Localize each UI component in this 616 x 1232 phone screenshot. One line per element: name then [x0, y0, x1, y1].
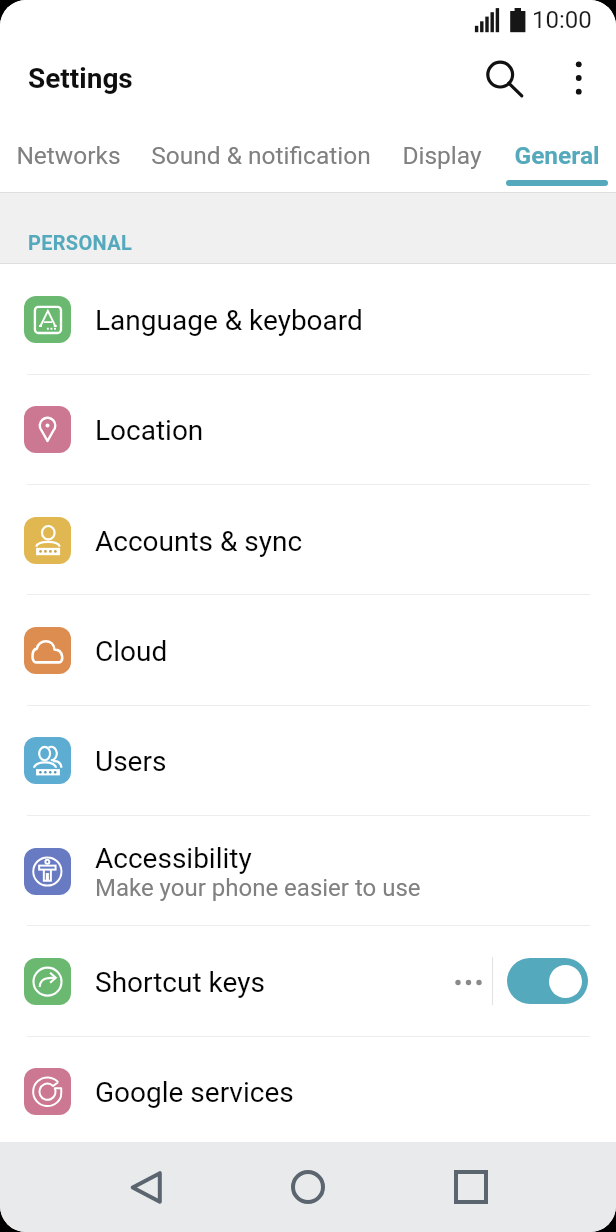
- staticText: General: [514, 141, 600, 170]
- staticText: Settings: [28, 62, 133, 95]
- button[interactable]: Accessibility: [0, 816, 616, 926]
- staticText: Make your phone easier to use: [95, 874, 421, 902]
- button[interactable]: Users: [0, 705, 616, 815]
- staticText: Shortcut keys: [95, 966, 265, 999]
- button[interactable]: Sound & notification: [136, 112, 386, 192]
- staticText: Language & keyboard: [95, 304, 363, 337]
- staticText: Google services: [95, 1076, 294, 1109]
- button[interactable]: General: [498, 112, 616, 192]
- button[interactable]: Cloud: [0, 595, 616, 705]
- button[interactable]: Accounts & sync: [0, 485, 616, 595]
- staticText: Accessibility: [95, 842, 252, 875]
- staticText: PERSONAL: [28, 231, 133, 254]
- button[interactable]: Back: [100, 1142, 190, 1232]
- button[interactable]: Location: [0, 374, 616, 484]
- staticText: 10:00: [532, 6, 592, 34]
- button[interactable]: Google services: [0, 1036, 616, 1146]
- staticText: Cloud: [95, 635, 168, 668]
- button[interactable]: Shortcut keys toggle: [507, 958, 588, 1004]
- button[interactable]: Networks: [0, 112, 136, 192]
- staticText: Display: [402, 141, 482, 170]
- staticText: Sound & notification: [151, 141, 371, 170]
- button[interactable]: Recents: [426, 1142, 516, 1232]
- staticText: Users: [95, 745, 167, 778]
- staticText: Networks: [16, 141, 121, 170]
- button[interactable]: Language & keyboard: [0, 264, 616, 374]
- staticText: Location: [95, 414, 204, 447]
- button[interactable]: Home: [263, 1142, 353, 1232]
- button[interactable]: Display: [386, 112, 498, 192]
- button[interactable]: More: [446, 953, 490, 1009]
- button[interactable]: Search: [472, 50, 528, 106]
- staticText: Accounts & sync: [95, 525, 303, 558]
- button[interactable]: Shortcut keys: [0, 926, 616, 1036]
- button[interactable]: More options: [550, 50, 606, 106]
